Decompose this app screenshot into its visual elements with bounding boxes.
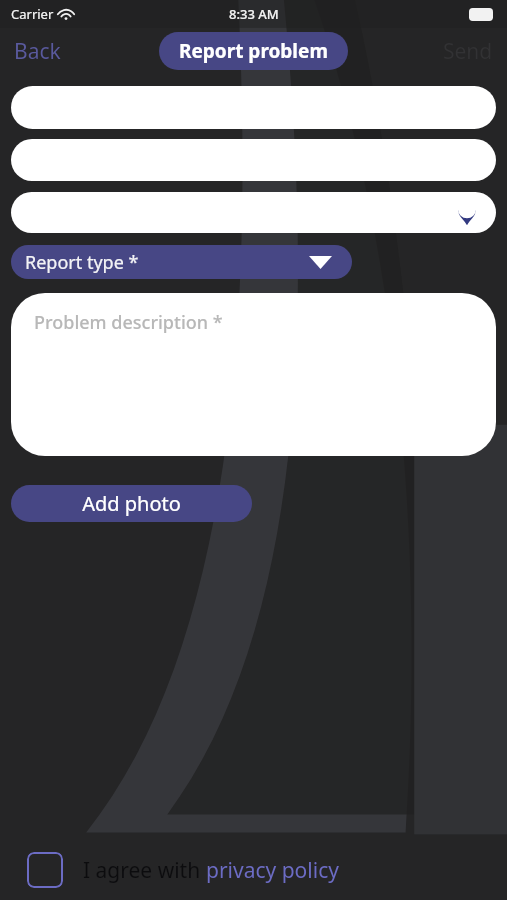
button[interactable]: Back xyxy=(0,31,75,72)
staticText: Send xyxy=(443,37,493,66)
staticText: Add photo xyxy=(82,490,181,517)
staticText: I agree with xyxy=(83,856,206,885)
button[interactable]: Location field xyxy=(11,192,496,233)
staticText: privacy policy xyxy=(206,856,339,885)
button[interactable]: Name field xyxy=(11,86,496,129)
button[interactable]: I agree with xyxy=(83,856,339,885)
button[interactable]: Report problem xyxy=(159,32,348,70)
button[interactable]: Email field xyxy=(11,139,496,181)
staticText: Report problem xyxy=(179,38,328,64)
button[interactable]: Pick location xyxy=(454,200,480,226)
staticText: Back xyxy=(14,37,61,66)
button[interactable]: Problem description * xyxy=(11,293,496,456)
staticText: Carrier xyxy=(11,5,54,23)
button[interactable]: Add photo xyxy=(11,485,252,522)
staticText: Problem description * xyxy=(34,310,223,335)
staticText: 8:33 AM xyxy=(229,5,279,23)
staticText: Report type * xyxy=(25,250,139,275)
button[interactable]: Agree to privacy policy xyxy=(27,852,63,888)
button[interactable]: Report type * xyxy=(11,245,352,279)
